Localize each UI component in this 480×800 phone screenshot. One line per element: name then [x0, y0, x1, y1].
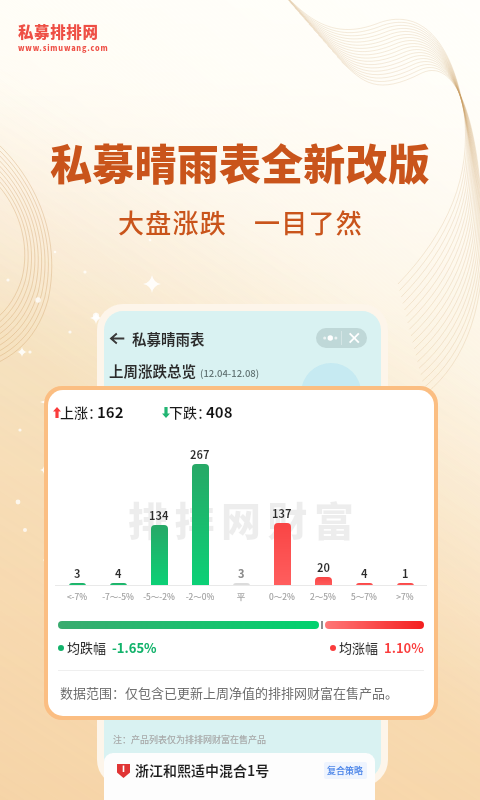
staticText: 平 — [222, 590, 260, 602]
staticText: 20 — [317, 559, 330, 575]
button[interactable]: Mini program menu — [316, 328, 367, 348]
staticText: -5～-2% — [140, 590, 178, 602]
staticText: 5～7% — [345, 590, 383, 602]
staticText: 1 — [402, 565, 409, 581]
staticText: 3 — [74, 565, 81, 581]
button[interactable]: 私募排排网 logo — [18, 20, 109, 54]
staticText: -1.65% — [112, 638, 157, 657]
staticText: 私募排排网 — [18, 20, 99, 42]
staticText: <-7% — [58, 590, 96, 602]
staticText: 0～2% — [263, 590, 301, 602]
staticText: 3 — [238, 565, 245, 581]
staticText: 267 — [190, 446, 210, 462]
staticText: 4 — [361, 565, 368, 581]
staticText: 复合策略 — [327, 764, 364, 777]
staticText: 4 — [115, 565, 122, 581]
staticText: -2～0% — [181, 590, 219, 602]
staticText: 408 — [206, 401, 233, 423]
button[interactable]: 浙江和熙适中混合1号 — [104, 753, 375, 800]
staticText: >7% — [386, 590, 424, 602]
staticText: 1.10% — [384, 638, 424, 657]
staticText: 上涨： — [60, 402, 102, 422]
staticText: 137 — [272, 505, 292, 521]
staticText: 134 — [149, 507, 169, 523]
staticText: 大盘涨跌 一目了然 — [118, 203, 363, 241]
staticText: -7～-5% — [99, 590, 137, 602]
staticText: 162 — [97, 401, 124, 423]
staticText: (12.04-12.08) — [200, 366, 260, 380]
staticText: 均跌幅 — [67, 638, 107, 657]
staticText: 均涨幅 — [339, 638, 379, 657]
staticText: 私募晴雨表 — [132, 328, 205, 349]
staticText: 数据范围：仅包含已更新上周净值的排排网财富在售产品。 — [60, 683, 399, 702]
staticText: 注：产品列表仅为排排网财富在售产品 — [113, 733, 267, 746]
staticText: 排排网财富 — [128, 490, 361, 548]
staticText: 上周涨跌总览 — [109, 360, 196, 381]
staticText: 下跌： — [169, 402, 211, 422]
button[interactable]: Back — [106, 327, 128, 349]
staticText: 2～5% — [304, 590, 342, 602]
staticText: 浙江和熙适中混合1号 — [135, 760, 270, 780]
staticText: 私募晴雨表全新改版 — [50, 131, 430, 192]
staticText: www.simuwang.com — [18, 43, 109, 54]
